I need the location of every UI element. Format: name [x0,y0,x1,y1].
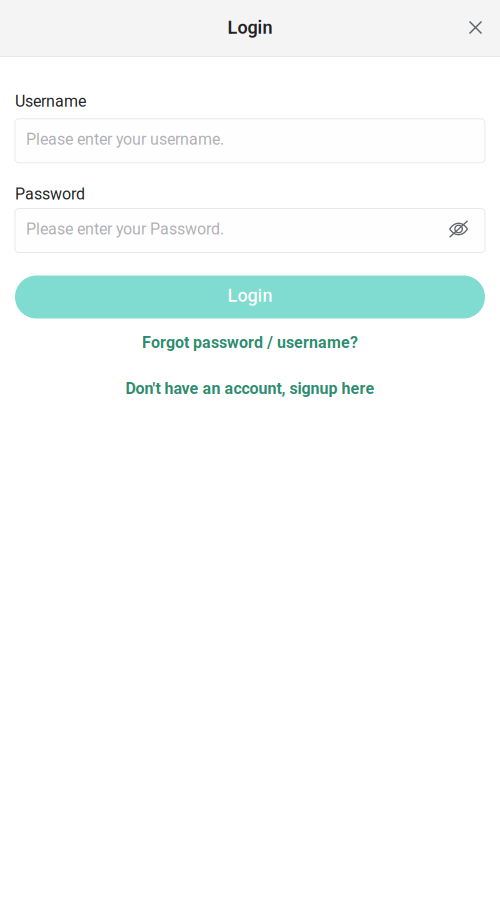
button[interactable]: Don't have an account, signup here [15,376,485,400]
button[interactable]: Show password [449,222,468,236]
staticText: Username [15,92,86,111]
button[interactable]: Password text field [26,220,224,238]
button[interactable]: Forgot password / username? [15,330,485,354]
staticText: Login [227,285,272,306]
staticText: Don't have an account, signup here [125,379,374,398]
button[interactable]: Close [457,9,494,48]
staticText: Login [227,17,272,38]
staticText: Please enter your username. [26,130,224,149]
button[interactable]: Username text field [15,119,485,163]
staticText: Please enter your Password. [26,220,224,238]
staticText: Forgot password / username? [142,333,358,352]
staticText: Password [15,185,85,204]
button[interactable]: Login [15,275,485,318]
